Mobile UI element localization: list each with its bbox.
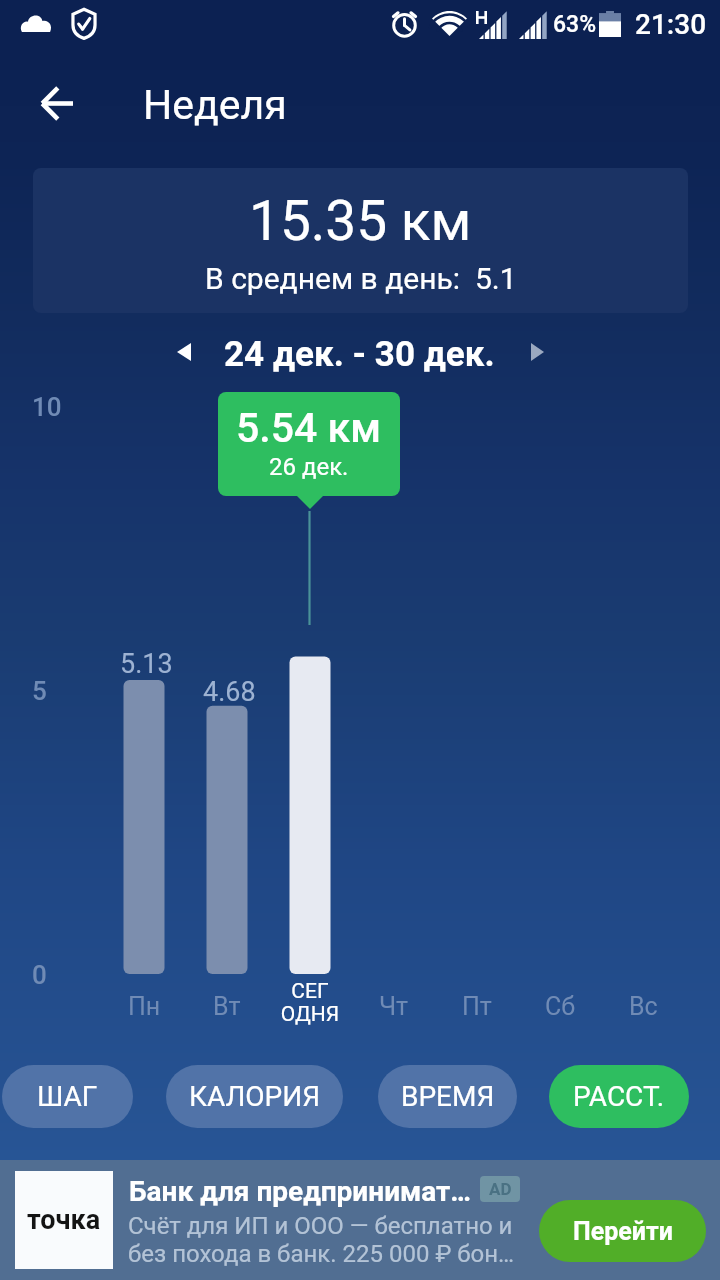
- button[interactable]: точка: [0, 1160, 720, 1280]
- staticText: Сб: [545, 992, 576, 1021]
- staticText: 21:30: [635, 8, 707, 41]
- staticText: 4.68: [203, 676, 256, 708]
- staticText: 5.54 км: [236, 404, 382, 452]
- button[interactable]: КАЛОРИЯ: [166, 1065, 343, 1128]
- button[interactable]: Перейти: [539, 1200, 706, 1262]
- staticText: ВРЕМЯ: [401, 1080, 495, 1113]
- staticText: 5.13: [120, 648, 173, 680]
- button[interactable]: Back: [32, 79, 80, 127]
- staticText: Счёт для ИП и ООО — бесплатно и: [128, 1212, 513, 1240]
- staticText: В среднем в день: 5.1: [205, 261, 517, 296]
- staticText: СЕГ ОДНЯ: [250, 979, 370, 1026]
- staticText: AD: [489, 1179, 512, 1199]
- staticText: без похода в банк. 225 000 ₽ бон…: [128, 1240, 515, 1268]
- staticText: Неделя: [143, 81, 287, 129]
- button[interactable]: Previous week: [160, 328, 208, 376]
- staticText: Перейти: [573, 1217, 673, 1246]
- staticText: 15.35 км: [249, 189, 472, 253]
- button[interactable]: 15.35 км: [33, 168, 688, 313]
- staticText: КАЛОРИЯ: [189, 1080, 321, 1113]
- staticText: Пн: [128, 992, 161, 1021]
- button[interactable]: ВРЕМЯ: [378, 1065, 517, 1128]
- staticText: РАССТ.: [573, 1080, 665, 1113]
- staticText: Вт: [213, 992, 241, 1021]
- staticText: 10: [32, 392, 62, 422]
- button[interactable]: РАССТ.: [549, 1065, 689, 1128]
- staticText: 0: [32, 960, 47, 990]
- button[interactable]: ШАГ: [2, 1065, 133, 1128]
- staticText: 26 дек.: [269, 453, 349, 481]
- staticText: точка: [27, 1204, 101, 1236]
- button[interactable]: Next week: [513, 328, 561, 376]
- staticText: Вс: [629, 992, 658, 1021]
- staticText: ШАГ: [37, 1080, 98, 1113]
- staticText: Чт: [379, 992, 409, 1021]
- staticText: 63%: [553, 11, 597, 38]
- staticText: Пт: [462, 992, 492, 1021]
- button[interactable]: 5.54 км: [218, 392, 400, 496]
- staticText: 5: [32, 676, 47, 706]
- staticText: 24 дек. - 30 дек.: [224, 334, 495, 375]
- staticText: Банк для предпринимат…: [129, 1175, 472, 1208]
